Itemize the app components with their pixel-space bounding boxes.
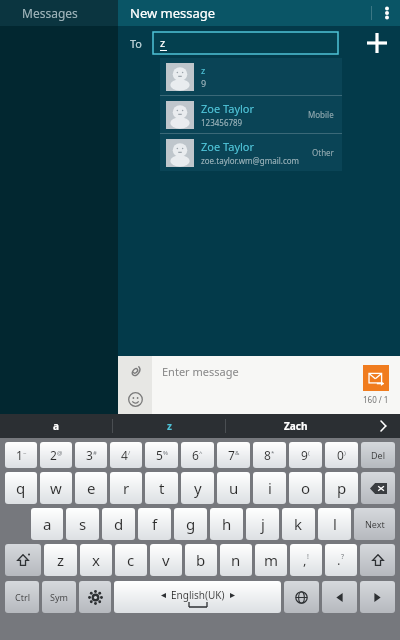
button[interactable]: 1 [5, 442, 37, 468]
staticText: ? [341, 552, 345, 562]
button[interactable]: Messages [0, 0, 118, 26]
button[interactable]: l [318, 508, 351, 540]
button[interactable]: s [66, 508, 99, 540]
button[interactable]: j [246, 508, 279, 540]
staticText: u [229, 478, 239, 498]
button[interactable]: y [181, 472, 214, 504]
staticText: l [333, 514, 337, 534]
button[interactable]: p [325, 472, 358, 504]
button[interactable]: 8 [253, 442, 286, 468]
button[interactable]: u [217, 472, 250, 504]
button[interactable]: 7 [217, 442, 250, 468]
staticText: 123456789 [201, 117, 243, 128]
button[interactable]: Move right [360, 581, 395, 613]
button[interactable]: 2 [40, 442, 72, 468]
button[interactable]: Shift [360, 544, 395, 576]
button[interactable]: , [290, 544, 322, 576]
staticText: 7 [228, 447, 235, 463]
button[interactable]: e [75, 472, 107, 504]
staticText: Ctrl [15, 591, 30, 603]
button[interactable]: Change language [284, 581, 319, 613]
staticText: % [163, 449, 168, 457]
staticText: d [114, 514, 124, 534]
button[interactable]: a [31, 508, 63, 540]
button[interactable]: 3 [75, 442, 107, 468]
button[interactable]: Send message [352, 356, 400, 414]
button[interactable]: 0 [325, 442, 358, 468]
staticText: 6 [192, 447, 199, 463]
button[interactable]: w [40, 472, 72, 504]
button[interactable]: Next [354, 508, 395, 540]
staticText: Mobile [308, 109, 334, 120]
button[interactable]: g [174, 508, 207, 540]
button[interactable]: Zoe Taylor [160, 96, 342, 133]
button[interactable]: r [110, 472, 142, 504]
staticText: English(UK) [171, 588, 225, 602]
button[interactable]: z [44, 544, 77, 576]
button[interactable]: x [80, 544, 112, 576]
button[interactable]: i [253, 472, 286, 504]
staticText: c [127, 550, 135, 570]
button[interactable]: f [138, 508, 171, 540]
button[interactable]: . [325, 544, 357, 576]
staticText: * [271, 449, 275, 457]
button[interactable]: z [113, 414, 225, 438]
button[interactable]: More options [374, 0, 400, 26]
button[interactable]: m [255, 544, 287, 576]
button[interactable]: z [153, 32, 338, 54]
staticText: 160 / 1 [363, 394, 389, 405]
button[interactable]: z [160, 58, 342, 95]
staticText: 4 [121, 447, 128, 463]
button[interactable]: o [289, 472, 322, 504]
staticText: Messages [22, 5, 78, 21]
staticText: z [201, 64, 206, 76]
staticText: Zoe Taylor [201, 139, 255, 154]
staticText: f [152, 514, 158, 534]
button[interactable]: Move left [322, 581, 357, 613]
button[interactable]: d [102, 508, 135, 540]
staticText: i [268, 478, 272, 498]
button[interactable]: 4 [110, 442, 142, 468]
button[interactable]: Add recipient [354, 26, 400, 60]
staticText: Other [312, 147, 334, 158]
button[interactable]: Zach [226, 414, 366, 438]
staticText: j [261, 514, 265, 534]
staticText: a [53, 419, 59, 433]
staticText: ~ [23, 449, 27, 457]
button[interactable]: 6 [181, 442, 214, 468]
button[interactable]: h [210, 508, 243, 540]
button[interactable]: Shift [5, 544, 41, 576]
button[interactable]: Insert emoticon [122, 386, 148, 412]
button[interactable]: Settings [79, 581, 111, 613]
staticText: z [57, 550, 65, 570]
staticText: z [167, 419, 172, 433]
staticText: ( [308, 449, 310, 457]
button[interactable]: Attach [122, 358, 148, 384]
staticText: 0 [337, 447, 344, 463]
staticText: p [337, 478, 347, 498]
button[interactable]: More suggestions [366, 414, 400, 438]
button[interactable]: Del [361, 442, 395, 468]
button[interactable]: a [0, 414, 112, 438]
button[interactable]: Enter message [152, 356, 352, 414]
button[interactable]: Ctrl [5, 581, 39, 613]
button[interactable]: 5 [145, 442, 178, 468]
button[interactable]: Sym [42, 581, 76, 613]
button[interactable]: c [115, 544, 147, 576]
staticText: o [301, 478, 311, 498]
staticText: 8 [264, 447, 271, 463]
button[interactable]: Zoe Taylor [160, 134, 342, 171]
button[interactable]: v [150, 544, 182, 576]
button[interactable]: q [5, 472, 37, 504]
staticText: y [194, 478, 202, 498]
button[interactable]: b [185, 544, 217, 576]
staticText: ^ [199, 449, 203, 457]
button[interactable]: t [145, 472, 178, 504]
button[interactable]: n [220, 544, 252, 576]
button[interactable]: Backspace [361, 472, 395, 504]
button[interactable]: k [282, 508, 315, 540]
button[interactable]: 9 [289, 442, 322, 468]
staticText: To [130, 36, 143, 51]
staticText: e [87, 478, 96, 498]
button[interactable]: English(UK) [114, 581, 281, 613]
